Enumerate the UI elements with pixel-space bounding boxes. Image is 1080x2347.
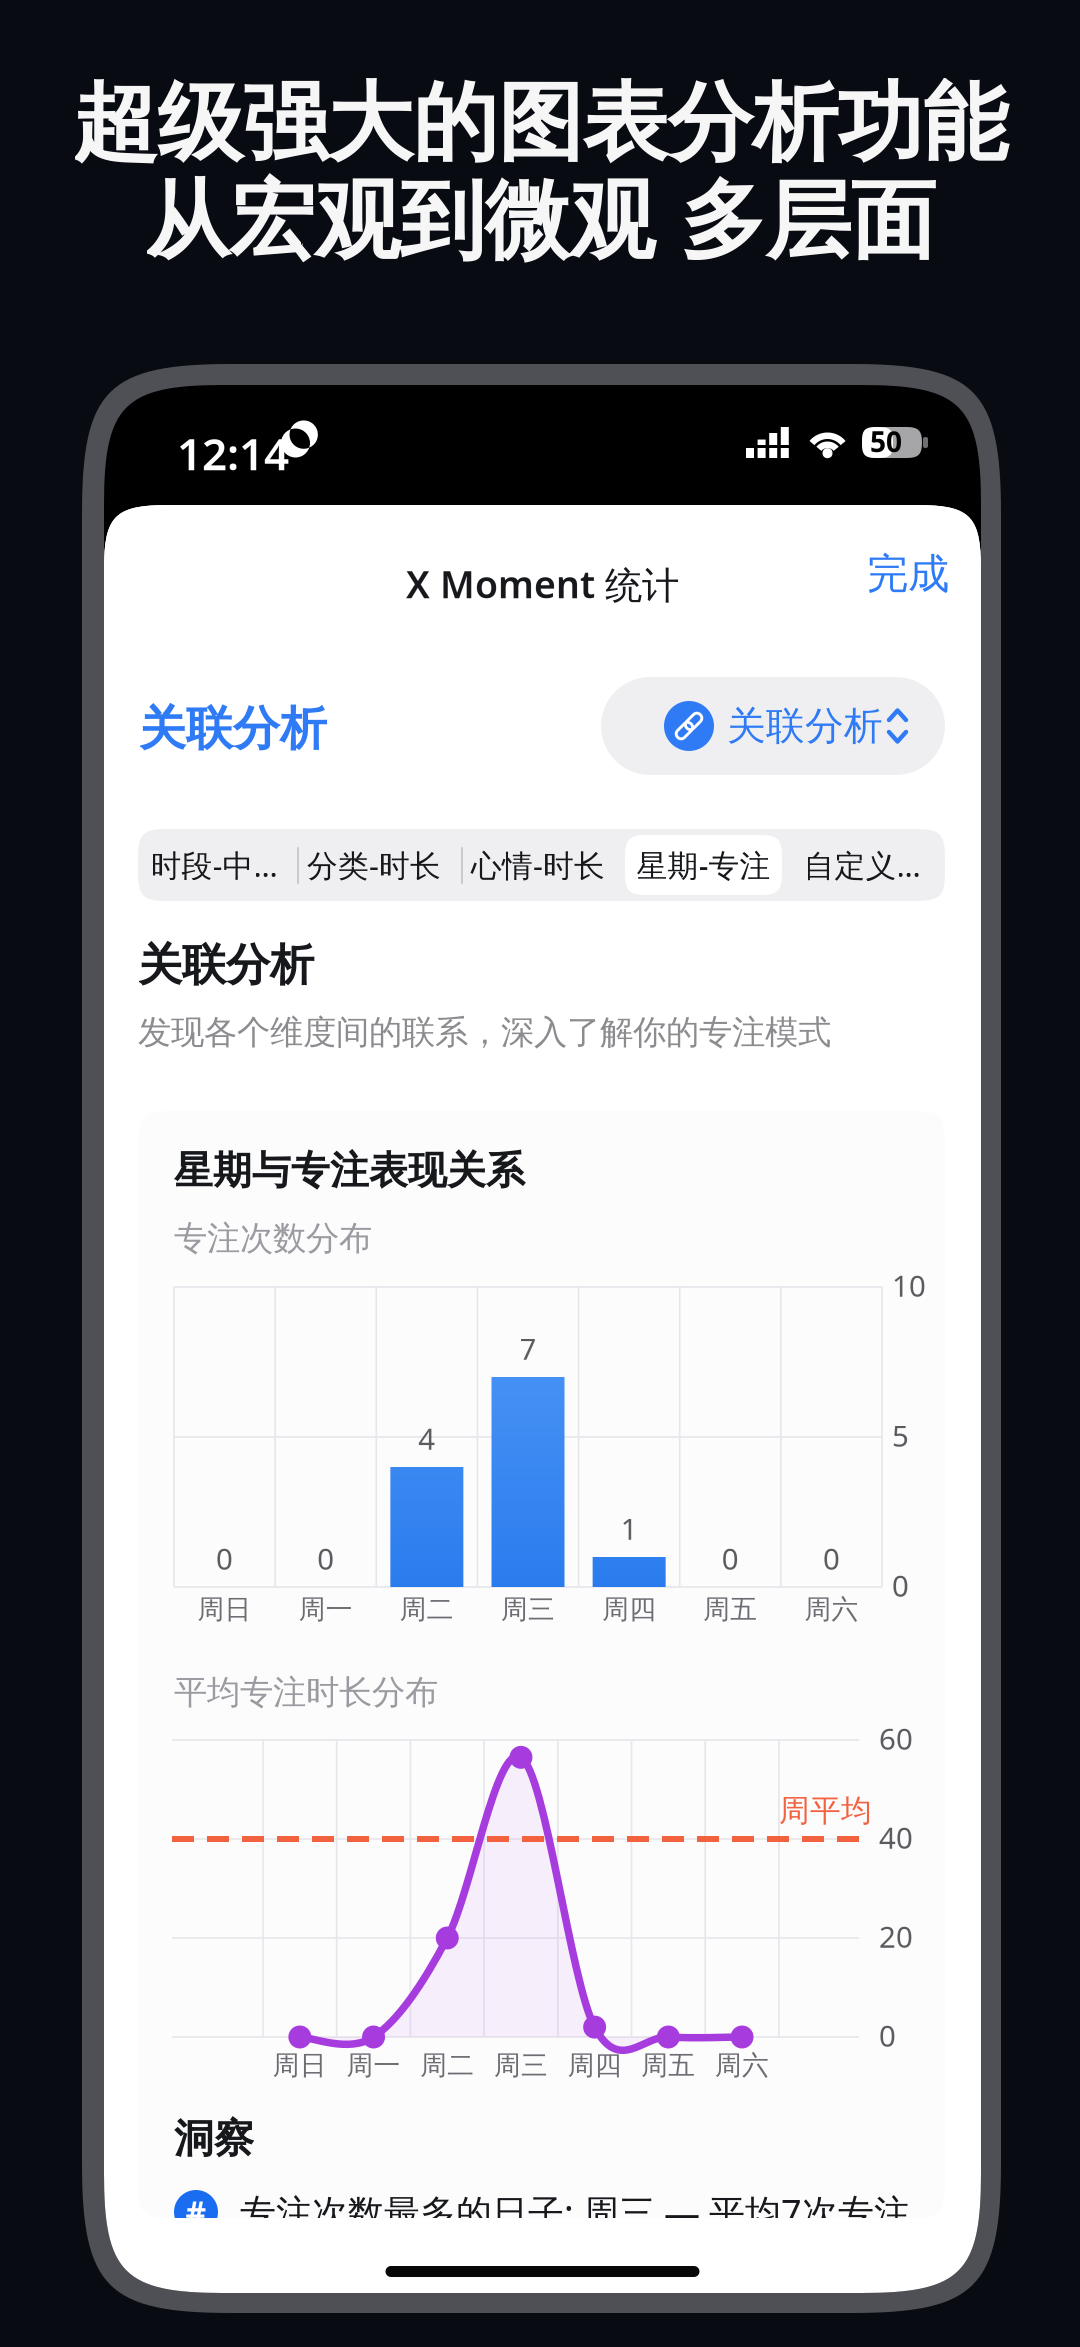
- staticText: #: [185, 2191, 206, 2233]
- staticText: 洞察: [174, 2114, 254, 2163]
- staticText: 平均专注时长分布: [174, 1672, 438, 1713]
- staticText: 0: [892, 1566, 909, 1605]
- staticText: 时段-中...: [150, 845, 277, 885]
- staticText: 周一: [299, 1593, 353, 1626]
- staticText: 0: [722, 1539, 739, 1578]
- staticText: 12:14: [177, 424, 289, 482]
- staticText: X Moment 统计: [406, 559, 679, 609]
- staticText: 周二: [400, 1593, 454, 1626]
- staticText: 50: [870, 423, 902, 460]
- staticText: 自定义...: [803, 845, 920, 885]
- staticText: 0: [216, 1539, 233, 1578]
- staticText: 40: [879, 1818, 913, 1857]
- staticText: 周四: [568, 2049, 622, 2082]
- staticText: 0: [879, 2016, 896, 2055]
- staticText: 20: [879, 1917, 913, 1956]
- staticText: 心情-时长: [471, 845, 605, 885]
- staticText: 周三: [501, 1593, 555, 1626]
- button[interactable]: 分类-时长: [305, 829, 443, 901]
- staticText: 周六: [804, 1593, 858, 1626]
- staticText: 从宏观到微观 多层面: [144, 169, 935, 274]
- staticText: 星期与专注表现关系: [174, 1147, 525, 1194]
- button[interactable]: 关联分析: [601, 677, 945, 775]
- staticText: 周一: [347, 2049, 401, 2082]
- staticText: 周四: [602, 1593, 656, 1626]
- staticText: 专注次数最多的日子: 周三 — 平均7次专注.: [240, 2188, 920, 2236]
- button[interactable]: 星期-专注: [625, 835, 782, 895]
- staticText: 周六: [715, 2049, 769, 2082]
- staticText: 完成: [867, 549, 949, 599]
- staticText: 周日: [273, 2049, 327, 2082]
- staticText: 超级强大的图表分析功能: [72, 71, 1007, 176]
- staticText: 周五: [703, 1593, 757, 1626]
- staticText: 周日: [198, 1593, 252, 1626]
- staticText: 4: [418, 1419, 435, 1458]
- staticText: 专注次数分布: [174, 1218, 372, 1259]
- staticText: 周三: [494, 2049, 548, 2082]
- button[interactable]: 时段-中...: [149, 829, 279, 901]
- staticText: 0: [823, 1539, 840, 1578]
- staticText: 7: [519, 1329, 536, 1368]
- staticText: 周五: [641, 2049, 695, 2082]
- button[interactable]: 自定义...: [802, 829, 922, 901]
- button[interactable]: 心情-时长: [469, 829, 607, 901]
- staticText: 周平均: [779, 1792, 872, 1830]
- staticText: 关联分析: [727, 702, 883, 750]
- staticText: 10: [892, 1266, 926, 1305]
- staticText: 周二: [420, 2049, 474, 2082]
- staticText: 关联分析: [138, 938, 314, 992]
- staticText: 0: [317, 1539, 334, 1578]
- staticText: 60: [879, 1719, 913, 1758]
- staticText: 发现各个维度间的联系，深入了解你的专注模式: [138, 1012, 831, 1053]
- button[interactable]: 完成: [829, 543, 949, 605]
- staticText: 星期-专注: [636, 845, 770, 885]
- staticText: 分类-时长: [307, 845, 441, 885]
- staticText: 1: [621, 1509, 638, 1548]
- staticText: 5: [892, 1416, 909, 1455]
- staticText: 关联分析: [139, 700, 327, 757]
